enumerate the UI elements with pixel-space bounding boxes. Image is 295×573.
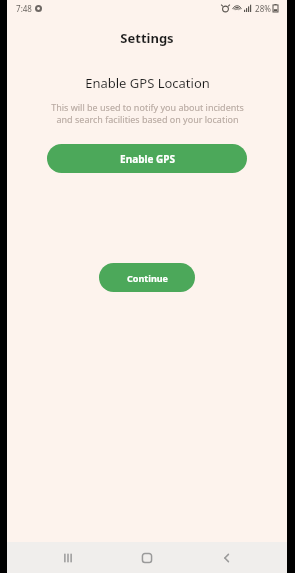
button[interactable]: Continue — [99, 263, 195, 292]
staticText: Enable GPS — [120, 152, 175, 166]
button[interactable]: Recent apps — [49, 542, 87, 573]
button[interactable]: Back — [208, 542, 246, 573]
staticText: Enable GPS Location — [85, 74, 210, 92]
staticText: 7:48 — [16, 3, 32, 14]
staticText: This will be used to notify you about in… — [51, 101, 244, 126]
button[interactable]: Home — [128, 542, 166, 573]
button[interactable]: Enable GPS — [47, 144, 247, 173]
staticText: Settings — [120, 29, 174, 47]
staticText: 28% — [255, 3, 271, 14]
staticText: Continue — [127, 272, 168, 284]
